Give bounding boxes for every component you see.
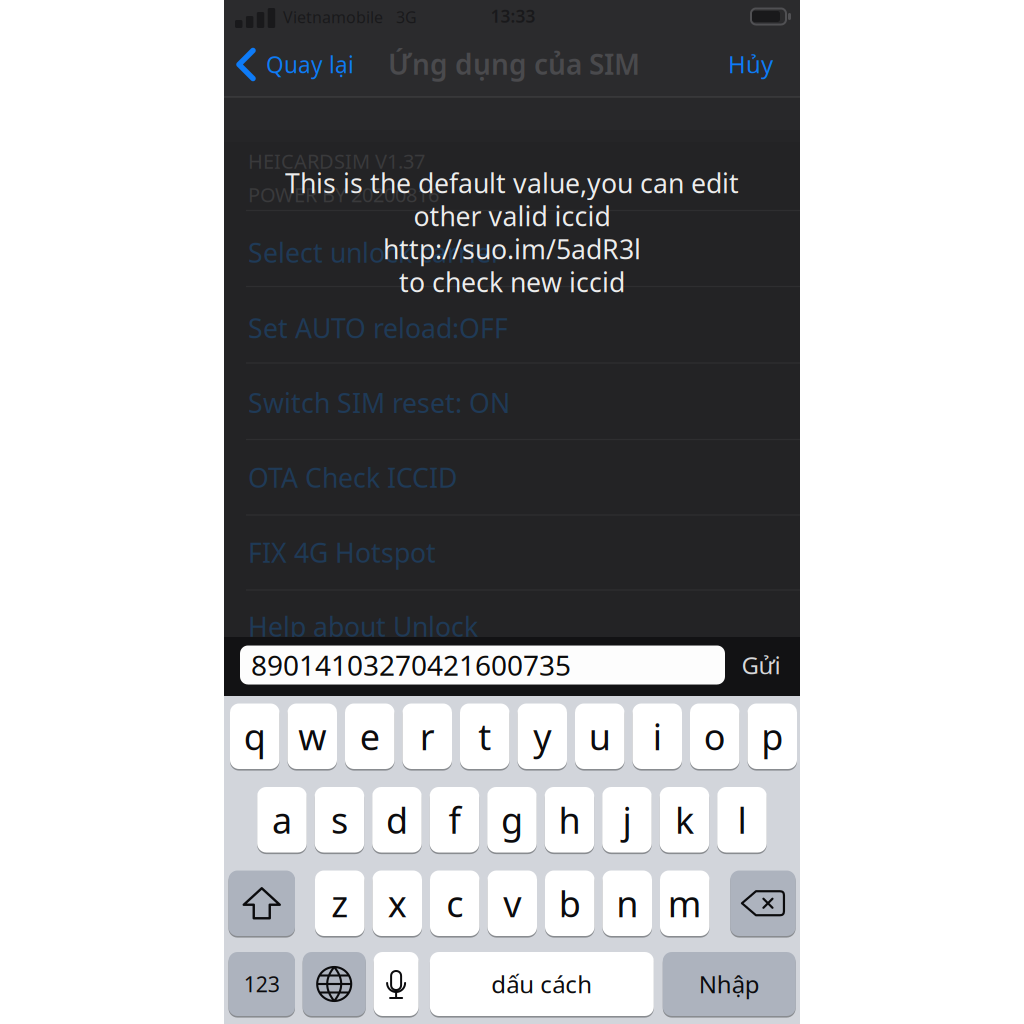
button[interactable]: Help about Unlock [248,589,800,663]
button[interactable]: x [372,869,422,937]
staticText: 3G [396,6,417,28]
button[interactable]: s [315,786,364,853]
staticText: v [503,879,521,927]
staticText: k [675,796,694,844]
staticText: Select unlock carrier [248,235,502,270]
staticText: c [446,879,463,927]
staticText: u [589,712,611,760]
staticText: f [448,796,460,844]
staticText: http://suo.im/5adR3l [383,231,641,267]
staticText: 123 [244,970,280,998]
button[interactable]: w [287,702,337,770]
button[interactable]: u [575,702,624,770]
button[interactable]: m [660,869,709,937]
button[interactable]: r [402,702,452,770]
button[interactable] [730,869,796,937]
button[interactable]: p [747,702,797,770]
button[interactable]: o [690,702,739,770]
button[interactable]: Gửi [726,640,796,690]
button[interactable]: Nhập [663,951,796,1017]
button[interactable]: y [517,702,567,770]
staticText: d [386,796,408,844]
button[interactable]: j [602,786,652,853]
button[interactable]: c [430,869,479,937]
staticText: Gửi [741,649,780,681]
staticText: dấu cách [491,968,592,1000]
button[interactable]: t [460,702,509,770]
staticText: This is the default value,you can edit [285,165,739,201]
staticText: x [388,879,407,927]
staticText: Hủy [728,48,773,80]
staticText: l [737,796,746,844]
staticText: q [244,712,266,760]
button[interactable]: Quay lại [236,38,436,90]
button[interactable]: OTA Check ICCID [248,440,800,514]
button[interactable] [303,951,366,1017]
staticText: FIX 4G Hotspot [248,535,436,570]
staticText: e [360,712,380,760]
staticText: Vietnamobile [283,6,383,28]
staticText: a [272,796,292,844]
button[interactable]: f [430,786,479,853]
staticText: t [478,712,491,760]
button[interactable]: a [257,786,307,853]
staticText: i [653,712,662,760]
staticText: z [331,879,348,927]
button[interactable]: Hủy [653,38,773,90]
button[interactable]: e [345,702,394,770]
staticText: POWER BY 20200816 [248,181,439,208]
button[interactable]: i [632,702,682,770]
staticText: p [761,712,783,760]
staticText: to check new iccid [399,264,625,300]
staticText: 89014103270421600735 [251,646,571,684]
staticText: w [298,712,326,760]
staticText: o [704,712,726,760]
staticText: g [501,796,523,844]
button[interactable]: 123 [228,951,295,1017]
button[interactable]: dấu cách [430,951,654,1017]
staticText: Nhập [699,968,760,1000]
staticText: h [558,796,580,844]
button[interactable]: FIX 4G Hotspot [248,515,800,589]
staticText: Quay lại [266,49,354,79]
staticText: j [622,796,631,844]
staticText: Set AUTO reload:OFF [248,310,508,345]
button[interactable] [374,951,419,1017]
button[interactable]: d [372,786,422,853]
button[interactable]: q [230,702,279,770]
button[interactable]: l [717,786,767,853]
button[interactable]: k [660,786,709,853]
button[interactable]: g [487,786,537,853]
button[interactable]: n [602,869,652,937]
button[interactable]: Select unlock carrier [248,215,800,289]
button[interactable]: z [315,869,364,937]
staticText: b [559,879,581,927]
button[interactable]: Switch SIM reset: ON [248,366,800,440]
staticText: n [616,879,638,927]
button[interactable] [240,645,725,684]
staticText: r [420,712,435,760]
staticText: HEICARDSIM V1.37 [248,148,425,174]
staticText: Help about Unlock [248,609,478,644]
staticText: 13:33 [490,4,535,27]
button[interactable]: h [545,786,594,853]
staticText: other valid iccid [413,198,610,234]
staticText: s [331,796,348,844]
button[interactable] [228,869,295,937]
staticText: OTA Check ICCID [248,460,457,495]
staticText: Switch SIM reset: ON [248,385,510,420]
button[interactable]: b [545,869,594,937]
button[interactable]: v [487,869,537,937]
staticText: y [533,712,551,760]
staticText: Ứng dụng của SIM [388,45,640,83]
button[interactable]: Set AUTO reload:OFF [248,291,800,365]
staticText: m [668,879,702,927]
